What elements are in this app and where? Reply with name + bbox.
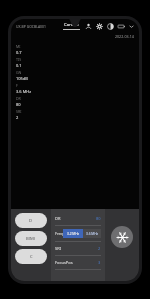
- button[interactable]: Brightness: [106, 22, 114, 30]
- staticText: F: [16, 83, 18, 88]
- staticText: 0.1: [16, 63, 22, 68]
- staticText: DR: [55, 216, 61, 221]
- staticText: 0.7: [16, 50, 22, 55]
- staticText: C: [30, 254, 33, 260]
- button[interactable]: Settings: [95, 22, 103, 30]
- staticText: SRI: [16, 109, 22, 114]
- button[interactable]: FocusPos: [55, 256, 101, 270]
- staticText: UX-BP GOCBLA001: [16, 24, 46, 29]
- staticText: 105dB: [16, 76, 28, 81]
- staticText: 80: [16, 102, 21, 107]
- staticText: SRI: [55, 246, 62, 251]
- staticText: D: [29, 218, 33, 224]
- button[interactable]: DR: [55, 212, 101, 226]
- button[interactable]: 3.6 MHz: [83, 229, 101, 238]
- staticText: Freq: [55, 231, 63, 236]
- button[interactable]: 3.2 MHz: [63, 229, 83, 238]
- staticText: MI: [16, 44, 21, 49]
- staticText: 3.2 MHz: [67, 232, 80, 236]
- button[interactable]: C: [15, 249, 47, 264]
- button[interactable]: Freeze: [111, 226, 133, 248]
- staticText: B(M): [26, 236, 36, 242]
- staticText: FocusPos: [55, 260, 73, 265]
- button[interactable]: SRI: [55, 242, 101, 256]
- button[interactable]: D: [15, 213, 47, 228]
- button[interactable]: Cardiac: [63, 22, 80, 30]
- staticText: 2: [98, 246, 101, 251]
- staticText: 3.6 MHz: [86, 232, 99, 236]
- button[interactable]: B(M): [15, 231, 47, 246]
- staticText: GN: [16, 70, 22, 75]
- staticText: Cardiac: [64, 22, 79, 28]
- staticText: 3: [98, 260, 101, 265]
- staticText: 2: [16, 115, 19, 120]
- staticText: 80: [96, 216, 101, 221]
- staticText: 2022-03-14: [115, 34, 134, 39]
- button[interactable]: More: [127, 22, 135, 30]
- button[interactable]: Battery: [117, 22, 125, 30]
- staticText: TIS: [16, 57, 22, 62]
- staticText: DR: [16, 96, 21, 101]
- staticText: 3.6 MHz: [16, 89, 32, 94]
- button[interactable]: Patient: [84, 22, 92, 30]
